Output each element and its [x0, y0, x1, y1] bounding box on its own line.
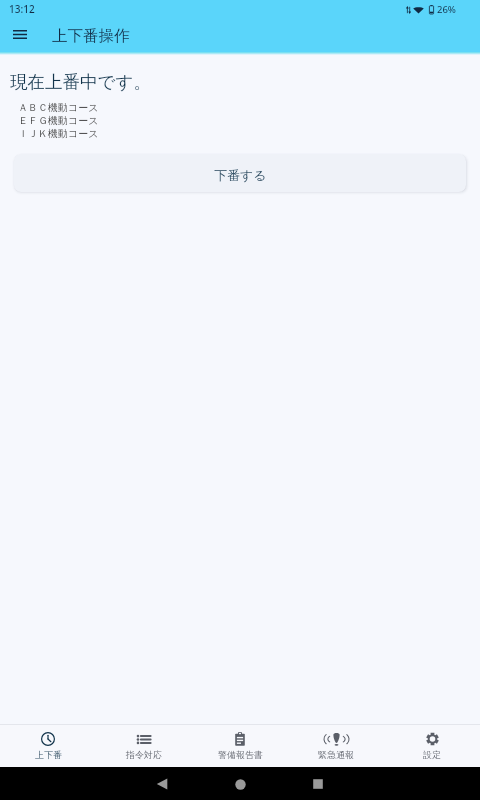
staticText: ＡＢＣ機動コース [18, 101, 99, 114]
staticText: 警備報告書 [218, 749, 263, 760]
staticText: 13:12 [9, 2, 35, 16]
staticText: 下番する [214, 167, 267, 183]
button[interactable]: Back [149, 771, 175, 797]
button[interactable]: Menu [4, 20, 36, 48]
staticText: 26% [437, 3, 456, 16]
button[interactable]: 警備報告書 [192, 725, 288, 767]
button[interactable]: 指令対応 [96, 725, 192, 767]
staticText: 設定 [423, 749, 441, 760]
staticText: ＥＦＧ機動コース [18, 114, 99, 127]
button[interactable]: 緊急通報 [288, 725, 384, 767]
button[interactable]: Home [227, 771, 253, 797]
button[interactable]: 設定 [384, 725, 480, 767]
staticText: 指令対応 [126, 749, 162, 760]
staticText: 現在上番中です。 [10, 71, 151, 93]
staticText: 緊急通報 [318, 749, 354, 760]
button[interactable]: 下番する [14, 154, 466, 192]
staticText: 上下番操作 [52, 26, 130, 46]
button[interactable]: Recents [305, 771, 331, 797]
staticText: 上下番 [35, 749, 62, 760]
button[interactable]: 上下番 [0, 725, 96, 767]
staticText: ＩＪＫ機動コース [18, 127, 99, 140]
